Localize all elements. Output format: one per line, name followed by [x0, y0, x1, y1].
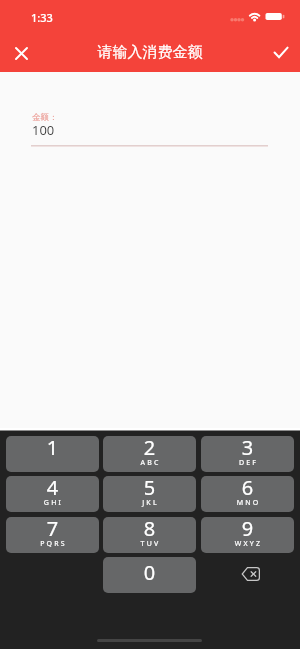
staticText: 3 — [201, 436, 294, 461]
staticText: 金额： — [32, 112, 58, 123]
staticText: 8 — [103, 517, 196, 542]
staticText: 9 — [201, 517, 294, 542]
staticText: MNO — [202, 498, 294, 508]
staticText: 4 — [6, 476, 99, 501]
staticText: GHI — [7, 498, 99, 508]
button[interactable]: 4 — [6, 476, 99, 512]
staticText: PQRS — [7, 539, 99, 549]
staticText: 1:33 — [31, 10, 53, 25]
staticText: 2 — [103, 436, 196, 461]
button[interactable]: 0 — [103, 557, 196, 593]
button[interactable]: 3 — [201, 436, 294, 472]
button[interactable]: 5 — [103, 476, 196, 512]
button[interactable]: 2 — [103, 436, 196, 472]
staticText: 6 — [201, 476, 294, 501]
staticText: ABC — [104, 458, 196, 468]
button[interactable]: 6 — [201, 476, 294, 512]
staticText: DEF — [202, 458, 294, 468]
button[interactable]: 9 — [201, 517, 294, 553]
button[interactable]: 1 — [6, 436, 99, 472]
staticText: 请输入消费金额 — [0, 43, 300, 62]
staticText: 5 — [103, 476, 196, 501]
staticText: WXYZ — [202, 539, 294, 549]
staticText: 1 — [6, 436, 99, 461]
staticText: TUV — [104, 539, 196, 549]
staticText: 100 — [32, 121, 55, 139]
button[interactable]: 7 — [6, 517, 99, 553]
button[interactable]: Close — [3, 35, 39, 71]
button[interactable]: Confirm — [263, 34, 299, 70]
staticText: 0 — [103, 559, 196, 586]
staticText: 7 — [6, 517, 99, 542]
button[interactable]: Backspace — [201, 557, 294, 593]
button[interactable]: 8 — [103, 517, 196, 553]
staticText: JKL — [104, 498, 196, 508]
